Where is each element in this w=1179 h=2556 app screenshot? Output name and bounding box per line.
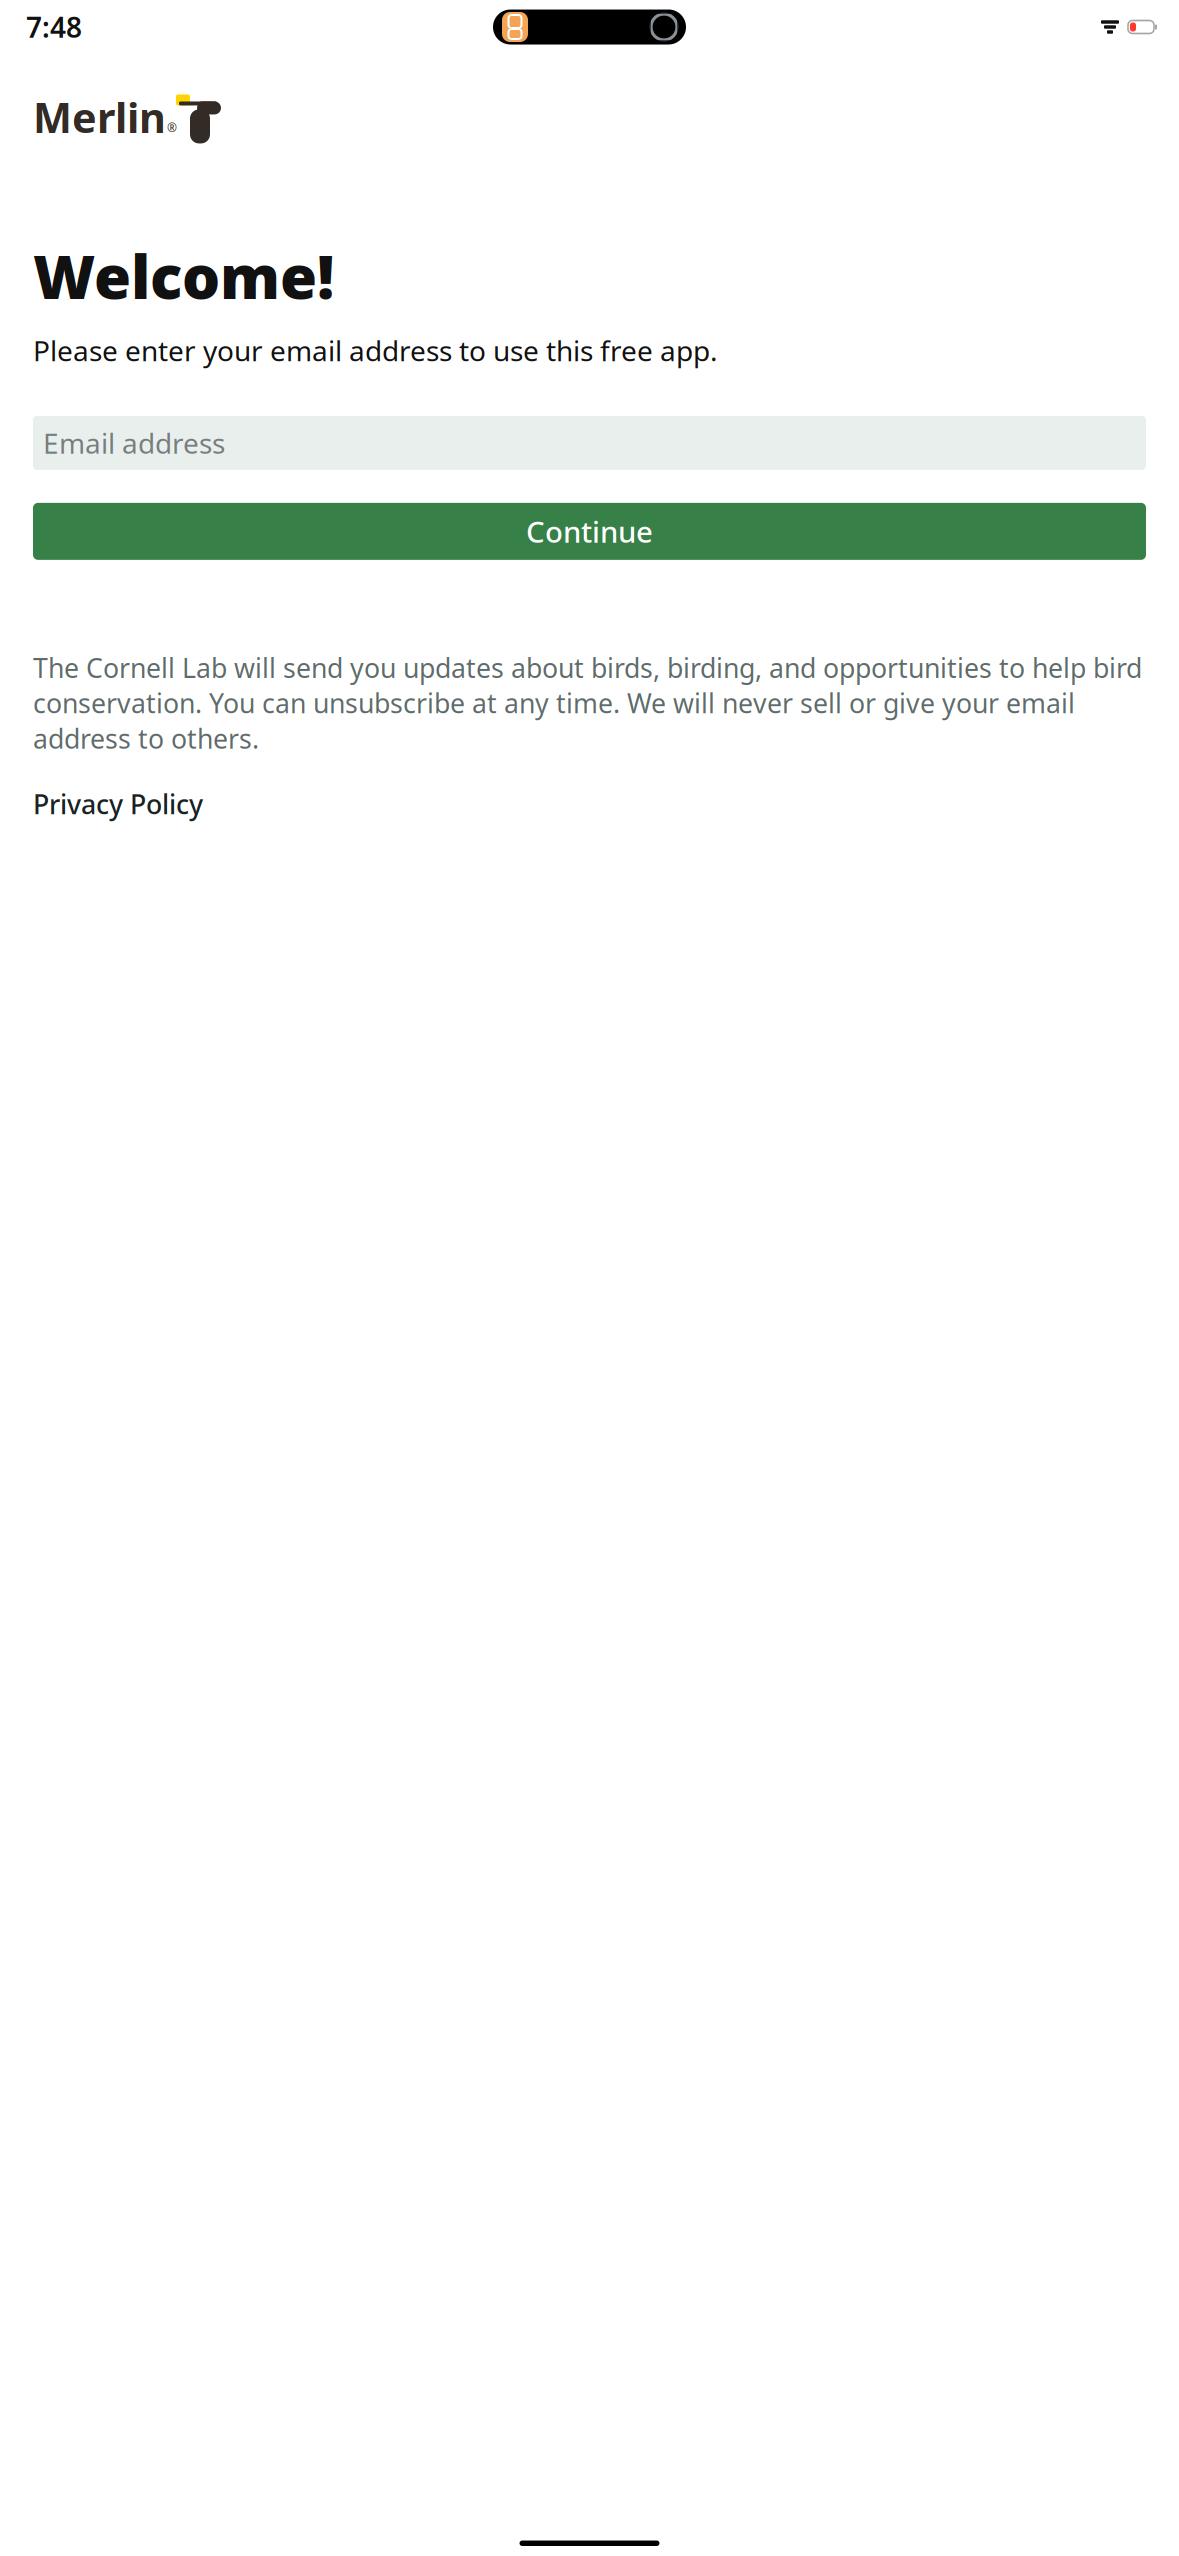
staticText: Merlin (33, 90, 166, 144)
staticText: Continue (526, 512, 653, 551)
staticText: Welcome! (33, 236, 334, 316)
staticText: Email address (43, 424, 225, 461)
staticText: ® (167, 119, 177, 135)
button[interactable]: Privacy Policy (33, 782, 203, 825)
staticText: Privacy Policy (33, 786, 203, 821)
staticText: Please enter your email address to use t… (33, 332, 718, 369)
button[interactable]: Continue (33, 503, 1146, 560)
staticText: The Cornell Lab will send you updates ab… (33, 650, 1142, 756)
staticText: 7:48 (26, 8, 82, 46)
button[interactable]: Email address (33, 416, 1146, 470)
